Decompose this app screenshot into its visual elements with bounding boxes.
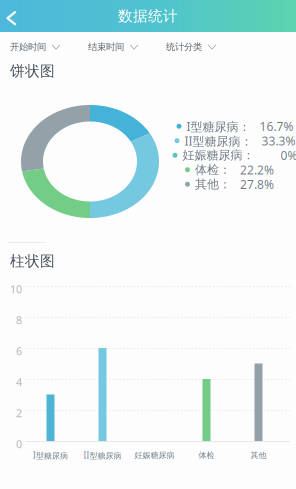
- button[interactable]: 统计分类: [166, 37, 216, 57]
- staticText: 0: [16, 437, 22, 451]
- staticText: 妊娠糖尿病：: [182, 148, 254, 163]
- staticText: 4: [16, 375, 22, 389]
- button[interactable]: 开始时间: [10, 37, 60, 57]
- staticText: 33.3%: [261, 133, 295, 149]
- staticText: 2: [16, 406, 22, 420]
- staticText: 妊娠糖尿病: [134, 450, 174, 460]
- staticText: II型糖尿病：: [184, 133, 252, 149]
- staticText: 16.7%: [259, 118, 293, 134]
- button[interactable]: 返回: [0, 0, 36, 32]
- staticText: 体检：: [195, 162, 231, 177]
- staticText: 体检: [198, 450, 214, 460]
- staticText: 其他：: [195, 177, 231, 192]
- staticText: 开始时间: [10, 41, 46, 53]
- staticText: 27.8%: [240, 176, 274, 192]
- staticText: I型糖尿病: [33, 450, 68, 461]
- button[interactable]: 结束时间: [88, 37, 138, 57]
- staticText: I型糖尿病：: [186, 118, 250, 134]
- staticText: 8: [16, 313, 22, 327]
- staticText: 数据统计: [118, 7, 178, 25]
- staticText: 6: [16, 344, 22, 358]
- staticText: 0%: [280, 147, 296, 163]
- staticText: 22.2%: [240, 162, 274, 178]
- staticText: II型糖尿病: [83, 450, 121, 461]
- staticText: 统计分类: [166, 41, 202, 53]
- staticText: 结束时间: [88, 41, 124, 53]
- staticText: 其他: [250, 450, 266, 460]
- staticText: 柱状图: [10, 252, 55, 270]
- staticText: 饼状图: [10, 62, 55, 80]
- staticText: 10: [10, 282, 22, 296]
